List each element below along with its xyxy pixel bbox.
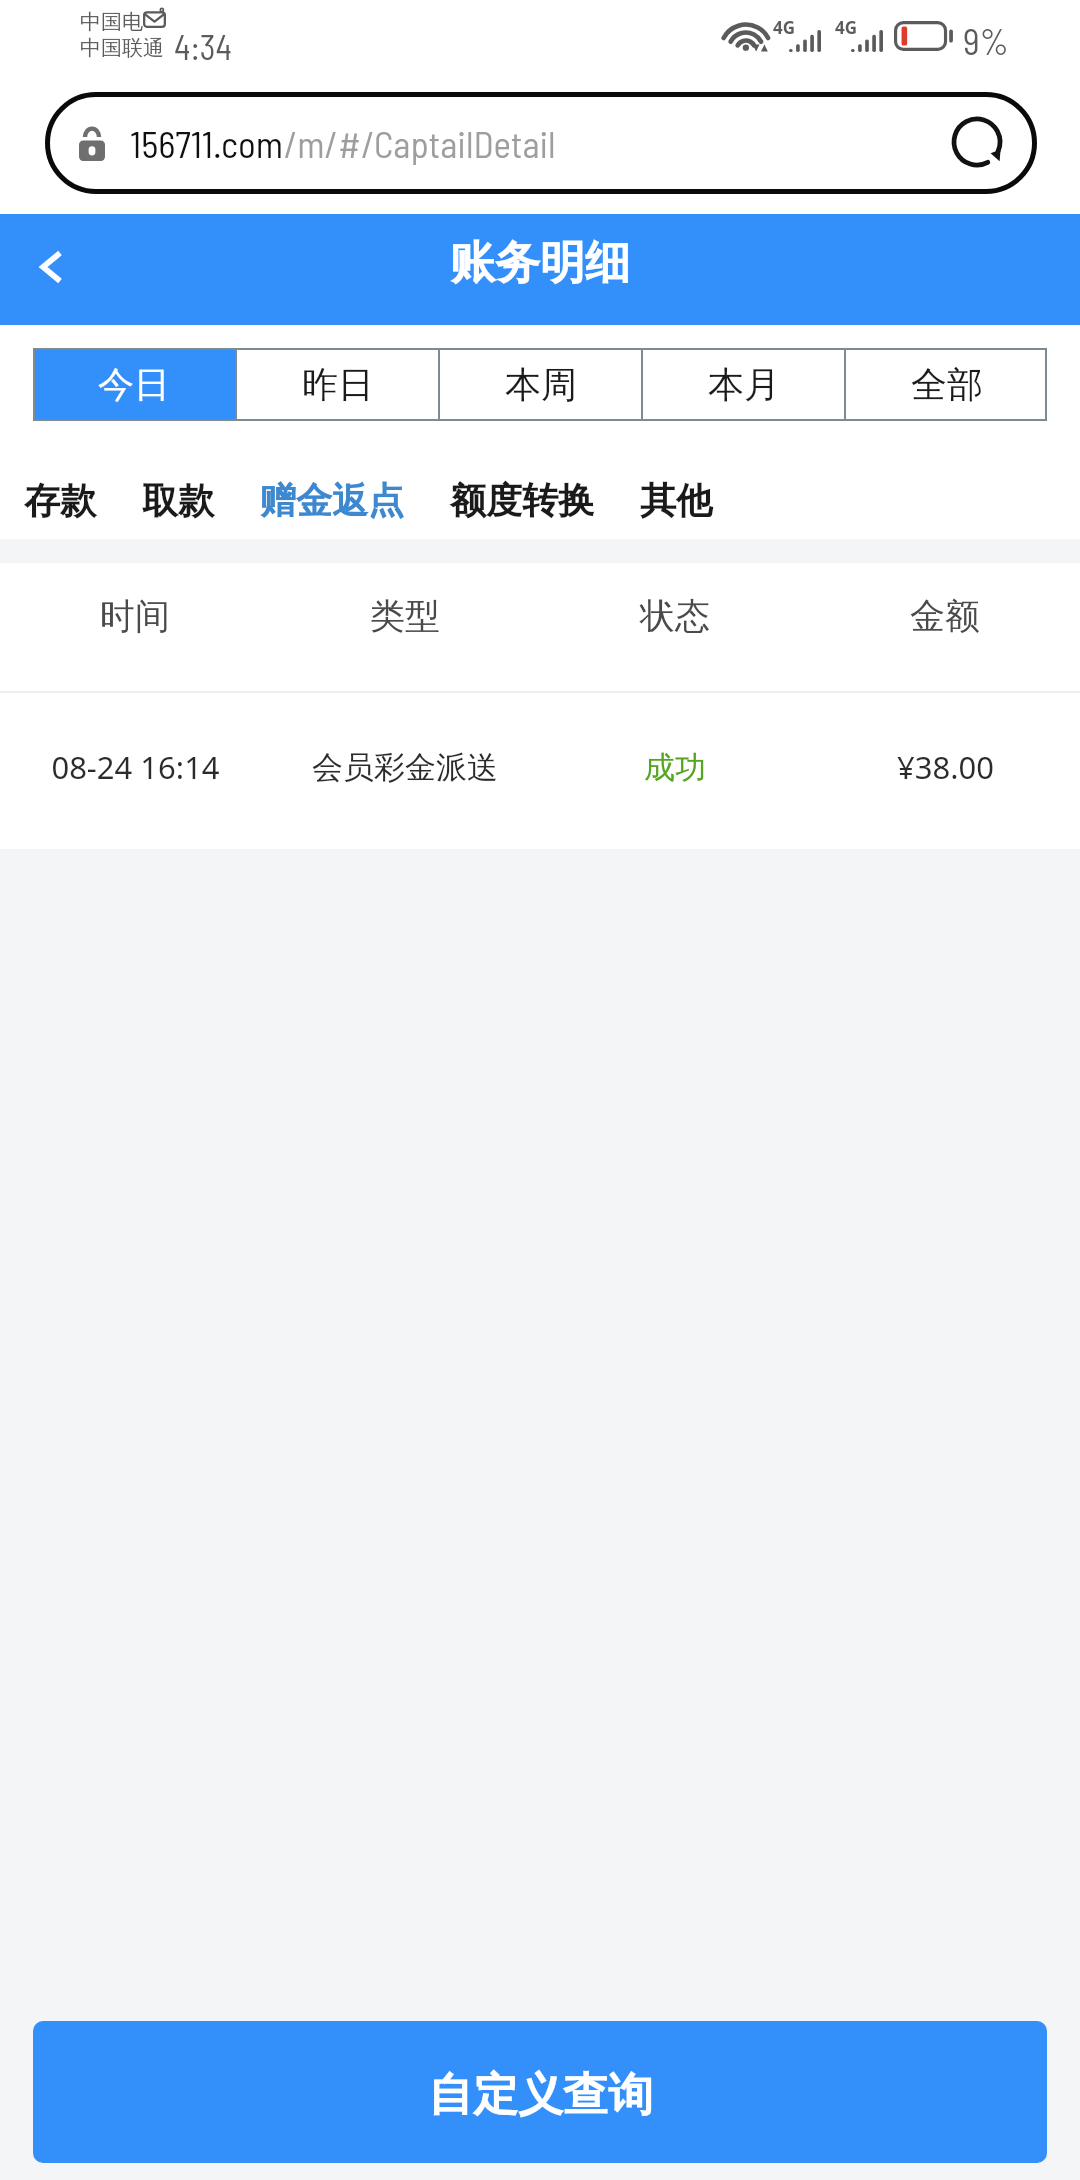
button[interactable]: 今日 [33, 348, 235, 421]
button[interactable]: Refresh [942, 107, 1012, 177]
staticText: 额度转换 [450, 478, 594, 523]
staticText: 4G [835, 16, 858, 39]
staticText: 赠金返点 [260, 478, 404, 523]
staticText: 状态 [640, 594, 710, 638]
staticText: 成功 [644, 748, 706, 787]
button[interactable]: Back [6, 225, 96, 309]
button[interactable]: 本周 [440, 348, 641, 421]
staticText: 其他 [640, 478, 712, 523]
button[interactable]: 本月 [643, 348, 844, 421]
staticText: 金额 [910, 594, 980, 638]
staticText: 4G [773, 16, 796, 39]
button[interactable]: 其他 [640, 473, 712, 527]
staticText: 156711.com [130, 121, 284, 165]
button[interactable]: 自定义查询 [33, 2021, 1047, 2163]
staticText: 会员彩金派送 [312, 748, 498, 787]
staticText: 08-24 16:14 [51, 746, 220, 788]
button[interactable]: 全部 [846, 348, 1047, 421]
staticText: 时间 [100, 594, 170, 638]
staticText: 本月 [708, 362, 780, 407]
staticText: 本周 [505, 362, 577, 407]
button[interactable]: 156711.com [45, 92, 1037, 194]
staticText: 昨日 [302, 362, 374, 407]
staticText: 取款 [142, 478, 214, 523]
button[interactable]: 赠金返点 [260, 473, 404, 527]
staticText: 账务明细 [450, 235, 630, 292]
staticText: ¥38.00 [897, 746, 994, 788]
button[interactable]: 额度转换 [450, 473, 594, 527]
staticText: 今日 [98, 362, 170, 407]
button[interactable]: 取款 [142, 473, 214, 527]
staticText: /m/#/CaptailDetail [284, 121, 556, 165]
staticText: 中国联通 [80, 35, 164, 61]
button[interactable]: 存款 [24, 473, 96, 527]
button[interactable]: 昨日 [237, 348, 438, 421]
staticText: 类型 [370, 594, 440, 638]
staticText: 4:34 [174, 26, 232, 67]
staticText: 存款 [24, 478, 96, 523]
staticText: 自定义查询 [428, 2067, 653, 2124]
staticText: 全部 [911, 362, 983, 407]
staticText: 中国电 [80, 9, 143, 35]
staticText: 9% [963, 19, 1009, 62]
